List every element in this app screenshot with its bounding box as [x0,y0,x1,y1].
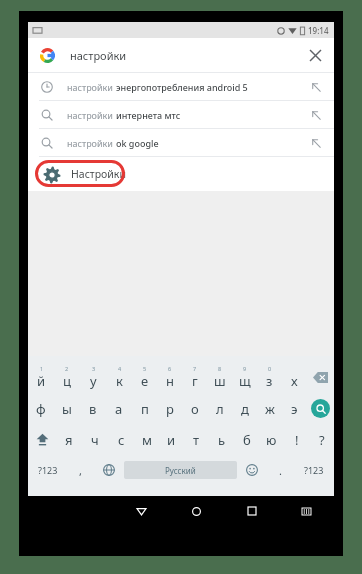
button[interactable]: Insert suggestion [308,79,324,95]
button[interactable]: ч [82,424,108,455]
button[interactable]: и [159,424,184,455]
button[interactable]: я [56,424,82,455]
button[interactable]: ю [259,424,284,455]
button[interactable]: настройки [28,101,334,128]
staticText: и [167,431,176,449]
staticText: 1 [40,365,44,372]
button[interactable]: ? [309,424,334,455]
staticText: с [118,431,125,449]
staticText: ю [266,431,277,449]
staticText: 5 [143,365,147,372]
button[interactable]: Emoji [237,455,267,485]
staticText: е [141,372,149,390]
staticText: . [279,463,282,478]
staticText: л [216,400,224,418]
button[interactable]: б [234,424,259,455]
button[interactable]: ф [28,393,54,424]
staticText: ? [319,431,325,449]
staticText: я [65,431,73,449]
button[interactable]: , [67,455,94,485]
staticText: м [142,431,152,449]
button[interactable]: о [182,393,207,424]
button[interactable]: в [80,393,106,424]
button[interactable]: Insert suggestion [308,107,324,123]
button[interactable]: . [267,455,294,485]
button[interactable]: 8 [207,362,232,393]
button[interactable]: ?123 [28,455,67,485]
button[interactable]: Back [114,501,169,521]
button[interactable]: 0 [257,362,282,393]
staticText: ш [214,372,226,390]
button[interactable]: Clear query [305,45,325,65]
button[interactable]: э [282,393,307,424]
button[interactable]: с [108,424,134,455]
staticText: ф [36,400,46,418]
button[interactable]: Русский [124,461,237,479]
button[interactable]: Backspace [307,362,334,393]
staticText: ы [62,400,72,418]
button[interactable]: настройки [28,38,334,72]
staticText: 7 [193,365,197,372]
staticText: настройки [67,137,116,149]
staticText: у [90,372,97,390]
staticText: б [243,431,251,449]
button[interactable]: т [184,424,209,455]
button[interactable]: ж [257,393,282,424]
button[interactable]: Recents [224,501,279,521]
button[interactable]: а [106,393,132,424]
staticText: настройки [70,48,127,63]
button[interactable]: ?123 [294,455,334,485]
button[interactable]: настройки [28,129,334,156]
staticText: т [193,431,200,449]
staticText: 3 [92,365,96,372]
staticText: ?123 [304,464,324,476]
button[interactable]: 1 [28,362,54,393]
button[interactable]: Настройки [28,157,334,191]
button[interactable]: ь [209,424,234,455]
button[interactable]: д [232,393,257,424]
button[interactable]: настройки [28,73,334,100]
staticText: Настройки [71,167,126,181]
button[interactable]: Insert suggestion [308,135,324,151]
button[interactable]: Search [311,399,330,418]
staticText: интернета мтс [116,109,181,121]
button[interactable]: Change language [94,455,124,485]
staticText: 8 [218,365,222,372]
button[interactable]: п [132,393,157,424]
staticText: к [116,372,123,390]
staticText: х [291,372,298,390]
staticText: о [191,400,199,418]
staticText: Русский [165,465,196,476]
staticText: д [241,400,249,418]
staticText: 6 [168,365,172,372]
button[interactable]: 3 [80,362,106,393]
button[interactable]: м [134,424,159,455]
button[interactable]: Home [169,501,224,521]
staticText: э [291,400,298,418]
button[interactable]: Shift [28,424,56,455]
staticText: ц [63,372,71,390]
button[interactable]: 5 [132,362,157,393]
staticText: в [89,400,97,418]
staticText: р [166,400,174,418]
button[interactable]: ! [284,424,309,455]
staticText: п [141,400,149,418]
staticText: ж [265,400,275,418]
button[interactable]: х [282,362,307,393]
button[interactable]: 7 [182,362,207,393]
button[interactable]: ы [54,393,80,424]
staticText: настройки [67,81,116,93]
button[interactable]: 6 [157,362,182,393]
staticText: ?123 [38,464,58,476]
staticText: ok google [116,137,159,149]
button[interactable]: 9 [232,362,257,393]
staticText: 4 [118,365,122,372]
button[interactable]: р [157,393,182,424]
button[interactable]: 2 [54,362,80,393]
staticText: энергопотребления android 5 [116,81,248,93]
button[interactable]: л [207,393,232,424]
button[interactable]: 4 [106,362,132,393]
button[interactable]: Hide keyboard [279,501,334,521]
staticText: щ [239,372,251,390]
staticText: , [79,463,82,478]
